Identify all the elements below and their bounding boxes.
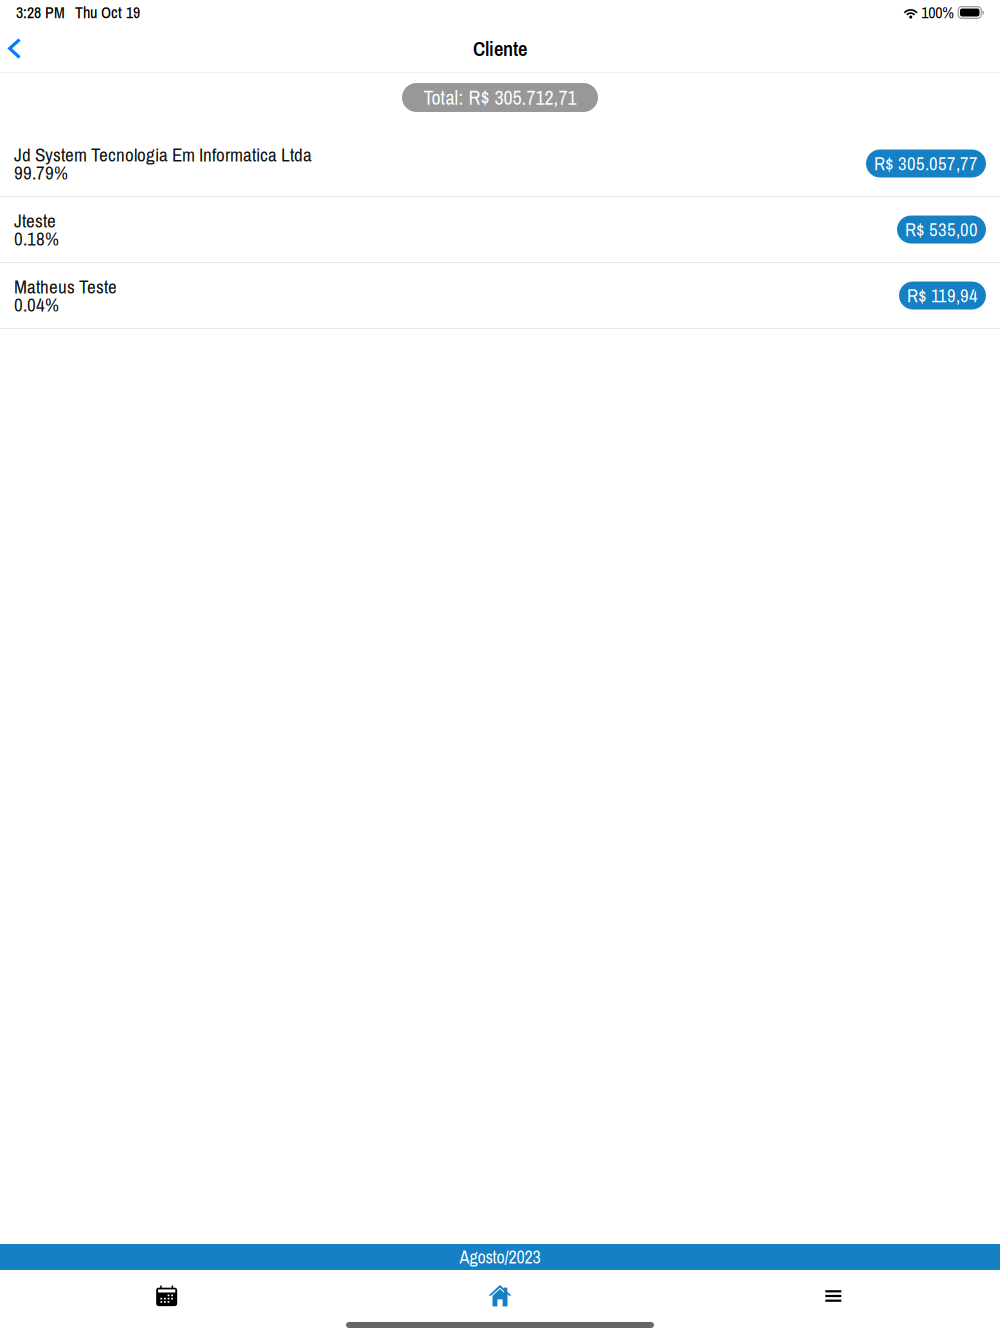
staticText: Cliente bbox=[473, 35, 527, 62]
button[interactable]: Back bbox=[0, 27, 35, 70]
button[interactable]: Menu bbox=[667, 1270, 1000, 1322]
button[interactable]: Jteste bbox=[0, 197, 1000, 263]
staticText: 0.04% bbox=[14, 292, 59, 317]
staticText: 0.18% bbox=[14, 226, 59, 251]
staticText: R$ 535,00 bbox=[905, 217, 978, 242]
staticText: R$ 305.057,77 bbox=[874, 151, 978, 176]
staticText: Matheus Teste bbox=[14, 274, 117, 299]
button[interactable]: Home bbox=[333, 1270, 667, 1322]
staticText: 3:28 PM bbox=[16, 2, 65, 23]
button[interactable]: Matheus Teste bbox=[0, 263, 1000, 329]
staticText: Thu Oct 19 bbox=[75, 2, 140, 23]
button[interactable]: Calendar bbox=[0, 1270, 333, 1322]
staticText: Total: R$ 305.712,71 bbox=[423, 84, 576, 111]
staticText: 100% bbox=[921, 2, 954, 23]
button[interactable]: Jd System Tecnologia Em Informatica Ltda bbox=[0, 131, 1000, 197]
staticText: R$ 119,94 bbox=[907, 283, 978, 308]
staticText: Agosto/2023 bbox=[459, 1245, 540, 1269]
staticText: 99.79% bbox=[14, 160, 68, 185]
staticText: Jd System Tecnologia Em Informatica Ltda bbox=[14, 142, 312, 167]
staticText: Jteste bbox=[14, 208, 56, 233]
